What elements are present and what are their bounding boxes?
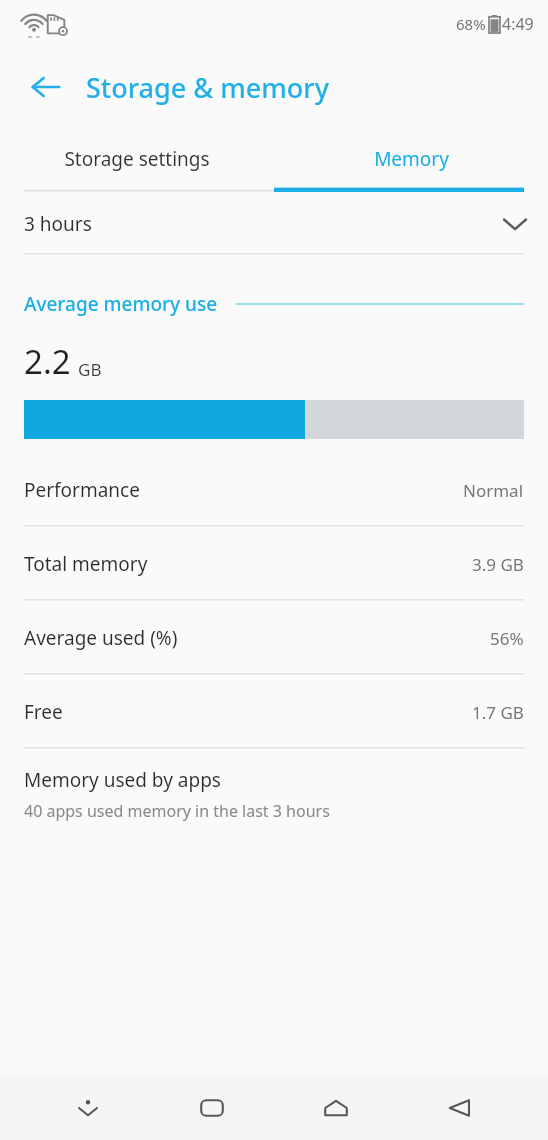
button[interactable]: Average used (%): [0, 601, 548, 675]
staticText: Average used (%): [24, 625, 178, 651]
staticText: Storage & memory: [86, 69, 329, 106]
staticText: Average memory use: [24, 291, 218, 317]
button[interactable]: Total memory: [0, 527, 548, 601]
button[interactable]: Free: [0, 675, 548, 749]
staticText: Performance: [24, 477, 140, 503]
staticText: 3.9 GB: [472, 553, 524, 576]
staticText: 1.7 GB: [472, 701, 524, 724]
staticText: Free: [24, 699, 63, 725]
staticText: 40 apps used memory in the last 3 hours: [24, 800, 330, 822]
button[interactable]: Hide navigation bar: [52, 1075, 124, 1140]
staticText: 68%: [456, 14, 486, 34]
button[interactable]: Recent apps: [176, 1075, 248, 1140]
staticText: GB: [78, 358, 102, 381]
staticText: Total memory: [24, 551, 148, 577]
staticText: 2.2: [24, 339, 71, 384]
button[interactable]: Home: [300, 1075, 372, 1140]
staticText: Normal: [463, 479, 524, 502]
button[interactable]: Back: [424, 1075, 496, 1140]
button[interactable]: Performance: [0, 453, 548, 527]
staticText: Memory used by apps: [24, 767, 221, 793]
button[interactable]: Memory used by apps: [0, 749, 548, 838]
button[interactable]: Storage settings: [0, 126, 274, 192]
staticText: 3 hours: [24, 211, 92, 237]
staticText: 56%: [490, 627, 524, 650]
button[interactable]: Back: [24, 65, 68, 109]
button[interactable]: Memory: [274, 126, 548, 192]
staticText: Memory: [374, 146, 449, 172]
staticText: 4:49: [502, 13, 534, 35]
button[interactable]: 3 hours: [0, 192, 548, 255]
staticText: Storage settings: [64, 146, 210, 172]
